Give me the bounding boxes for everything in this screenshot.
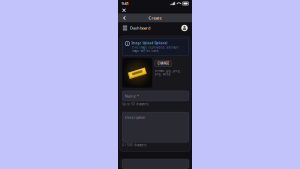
button[interactable]: Account — [180, 22, 188, 33]
staticText: Image Upload Optional — [132, 41, 168, 45]
staticText: Name * — [125, 93, 139, 99]
staticText: Create — [148, 15, 161, 21]
staticText: If no image is provided, a default image… — [132, 46, 179, 53]
button[interactable]: Menu — [121, 22, 128, 33]
staticText: CHANGE — [158, 62, 169, 65]
staticText: Formats: jpg, jpeg, png, webp — [155, 69, 181, 76]
staticText: 0 / 500 characters — [122, 144, 146, 147]
staticText: Up to 50 characters — [122, 102, 148, 106]
button[interactable]: Close — [120, 7, 127, 13]
button[interactable]: Selected image — [122, 58, 152, 88]
staticText: 9:41 — [121, 1, 128, 6]
button[interactable]: Back — [120, 13, 128, 22]
staticText: Dashboard — [130, 25, 150, 31]
staticText: Description — [125, 115, 145, 120]
button[interactable]: CHANGE — [155, 60, 171, 67]
